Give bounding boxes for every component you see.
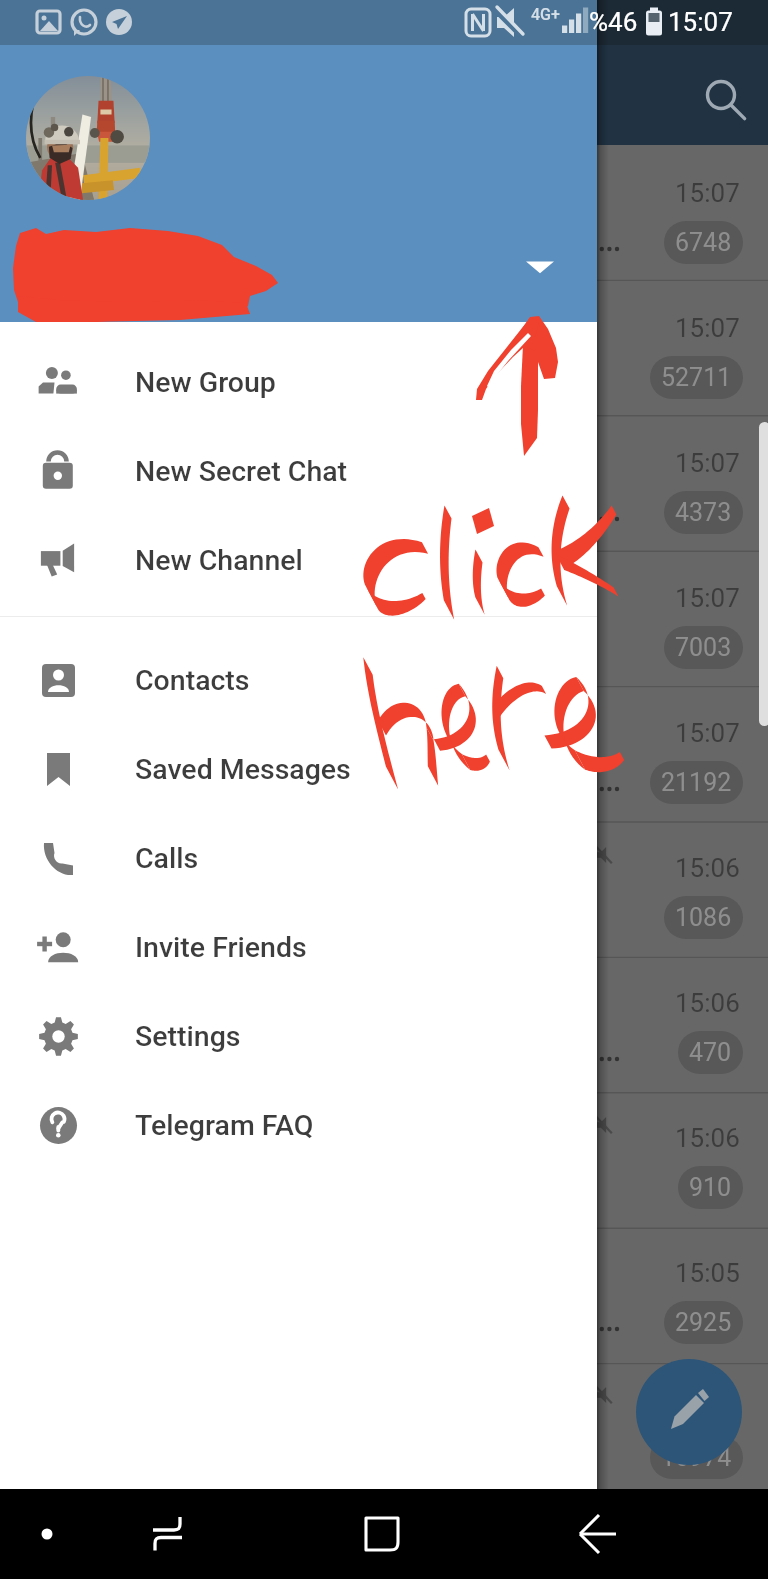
button[interactable]: Invite Friends <box>0 903 597 992</box>
button[interactable]: 15:06 <box>0 820 768 955</box>
staticText: 1086 <box>675 903 732 932</box>
button[interactable]: New Group <box>0 338 597 427</box>
button[interactable]: Search <box>678 52 764 138</box>
button[interactable]: 15:07 <box>0 145 768 280</box>
staticText: 15:06 <box>675 1123 740 1153</box>
staticText: 15:07 <box>668 7 733 37</box>
staticText: 15:06 <box>675 853 740 883</box>
staticText: 2925 <box>675 1308 732 1337</box>
staticText: 6748 <box>675 228 732 257</box>
button[interactable]: 15:07 <box>0 415 768 550</box>
button[interactable]: New Channel <box>0 516 597 605</box>
button[interactable]: New Secret Chat <box>0 427 597 516</box>
staticText: 7003 <box>675 633 732 662</box>
staticText: Telegram FAQ <box>135 1109 314 1142</box>
button[interactable]: Contacts <box>0 636 597 725</box>
staticText: %46 <box>589 7 638 37</box>
staticText: Contacts <box>135 664 250 697</box>
staticText: 52711 <box>661 363 732 392</box>
button[interactable]: 15:07 <box>0 550 768 685</box>
button[interactable]: Calls <box>0 814 597 903</box>
staticText: 910 <box>689 1173 732 1202</box>
staticText: 21192 <box>661 768 732 797</box>
staticText: Saved Messages <box>135 753 351 786</box>
button[interactable] <box>0 45 597 322</box>
staticText: New Secret Chat <box>135 455 348 488</box>
staticText: New Channel <box>135 544 303 577</box>
button[interactable]: Settings <box>0 992 597 1081</box>
button[interactable]: 15:05 <box>0 1360 768 1495</box>
staticText: 15:06 <box>675 988 740 1018</box>
staticText: 4373 <box>675 498 732 527</box>
staticText: 470 <box>689 1038 732 1067</box>
button[interactable]: 15:07 <box>0 685 768 820</box>
staticText: 15:07 <box>675 313 740 343</box>
button[interactable]: 15:07 <box>0 280 768 415</box>
button[interactable]: 15:06 <box>0 955 768 1090</box>
button[interactable]: 15:06 <box>0 1090 768 1225</box>
button[interactable]: Saved Messages <box>0 725 597 814</box>
staticText: 15:07 <box>675 178 740 208</box>
button[interactable]: 15:05 <box>0 1225 768 1360</box>
staticText: Calls <box>135 842 199 875</box>
staticText: 15:05 <box>675 1258 740 1288</box>
staticText: 16974 <box>661 1443 732 1472</box>
staticText: Settings <box>135 1020 241 1053</box>
staticText: 15:05 <box>675 1393 740 1423</box>
button[interactable]: Telegram FAQ <box>0 1081 597 1170</box>
staticText: New Group <box>135 366 276 399</box>
staticText: Invite Friends <box>135 931 307 964</box>
button[interactable]: New message <box>636 1359 742 1465</box>
staticText: 15:07 <box>675 448 740 478</box>
staticText: 15:07 <box>675 718 740 748</box>
staticText: 15:07 <box>675 583 740 613</box>
staticText: 4G+ <box>531 5 560 24</box>
